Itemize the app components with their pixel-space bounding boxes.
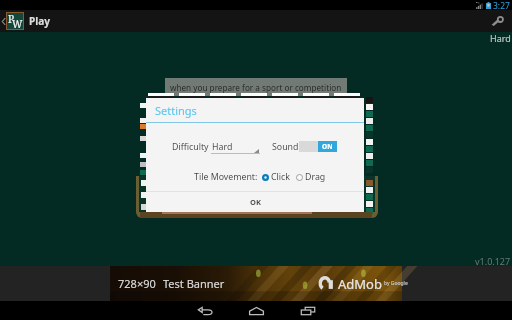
staticText: Hard — [490, 32, 511, 44]
button[interactable]: Home — [232, 301, 280, 320]
staticText: Sound — [272, 141, 299, 153]
staticText: Difficulty — [172, 141, 209, 153]
staticText: Hard — [212, 141, 233, 153]
staticText: 728×90 — [118, 276, 156, 291]
staticText: ON — [322, 142, 333, 151]
staticText: AdMob — [338, 275, 382, 293]
button[interactable]: Navigate up — [0, 10, 24, 32]
button[interactable]: Settings — [485, 10, 509, 32]
staticText: P — [8, 12, 15, 26]
staticText: Settings — [155, 103, 197, 118]
button[interactable]: Drag — [296, 171, 326, 183]
staticText: OK — [250, 197, 261, 207]
button[interactable]: Recent apps — [284, 301, 332, 320]
staticText: 3:27 — [493, 0, 510, 10]
staticText: W — [12, 17, 23, 31]
button[interactable]: Difficulty: Hard — [211, 138, 260, 154]
staticText: Drag — [305, 171, 326, 183]
staticText: v1.0.127 — [475, 255, 511, 267]
button[interactable]: OK — [146, 192, 364, 212]
button[interactable]: Back — [181, 301, 229, 320]
staticText: Tile Movement: — [194, 171, 258, 183]
staticText: Play — [29, 14, 50, 28]
staticText: Click — [271, 171, 291, 183]
staticText: by Google — [384, 280, 408, 287]
staticText: Test Banner — [163, 276, 225, 291]
button[interactable]: Sound on — [299, 141, 337, 152]
staticText: when you prepare for a sport or competit… — [170, 82, 342, 93]
button[interactable]: Click — [262, 171, 291, 183]
